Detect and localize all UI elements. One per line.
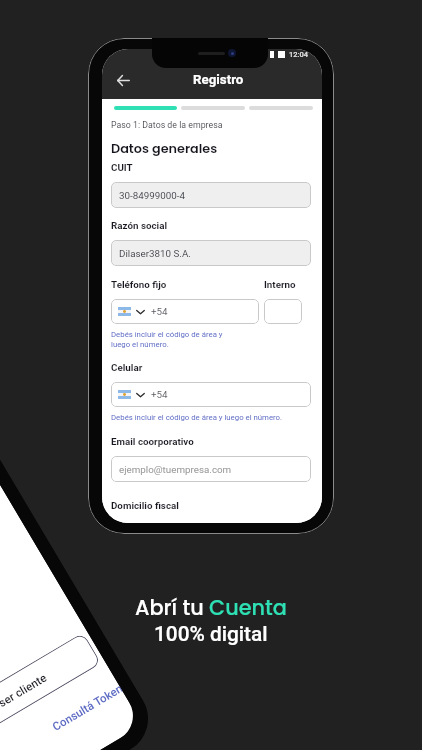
button[interactable]: Consultá Token [50,682,124,733]
button[interactable]: Dilaser3810 S.A. [111,240,311,266]
staticText: Interno [264,279,296,290]
staticText: Quiero ser cliente [0,670,49,728]
button[interactable]: Back [113,71,134,90]
button[interactable]: +54 [111,299,259,324]
staticText: +54 [151,389,168,400]
staticText: 12:04 [289,50,309,59]
button[interactable]: 30-84999000-4 [111,182,311,208]
button[interactable]: ejemplo@tuempresa.com [111,456,311,482]
button[interactable]: +54 [111,382,311,407]
staticText: Celular [111,362,143,373]
button[interactable]: Quiero ser cliente [0,632,101,750]
staticText: Datos generales [111,140,218,158]
staticText: +54 [151,306,168,317]
staticText: Dilaser3810 S.A. [119,248,191,259]
staticText: Email coorporativo [111,436,194,447]
staticText: CUIT [111,162,133,173]
staticText: 100% digital [154,622,268,646]
staticText: Razón social [111,220,168,231]
staticText: Abrí tu Cuenta [135,593,287,622]
staticText: Paso 1: Datos de la empresa [111,120,223,130]
button[interactable] [264,299,302,324]
staticText: Debés incluir el código de área y luego … [111,413,283,422]
staticText: Domicilio fiscal [111,500,179,511]
staticText: Teléfono fijo [111,279,167,290]
staticText: ejemplo@tuempresa.com [119,464,232,475]
staticText: Registro [193,72,244,88]
staticText: Debés incluir el código de área y luego … [111,330,223,349]
staticText: 30-84999000-4 [119,190,185,201]
staticText: Consultá Token [50,682,124,733]
